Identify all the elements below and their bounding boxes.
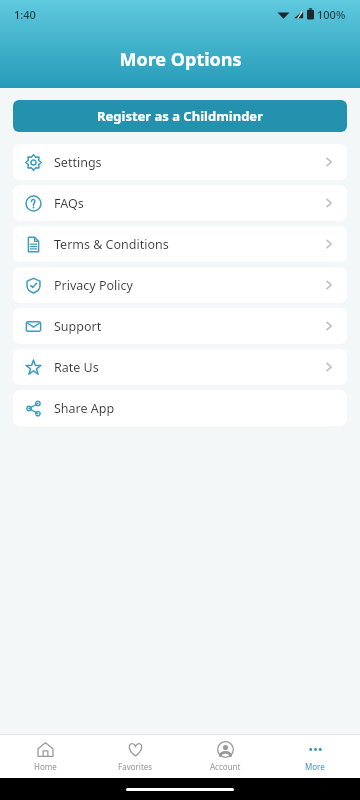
staticText: FAQs <box>54 195 84 212</box>
other: Share App <box>25 400 42 417</box>
staticText: Share App <box>54 400 115 417</box>
other: Rate Us <box>25 359 42 376</box>
button[interactable]: Support <box>13 308 347 344</box>
button[interactable]: Settings <box>13 144 347 180</box>
staticText: Rate Us <box>54 359 99 376</box>
button[interactable]: Register as a Childminder <box>13 100 347 132</box>
button[interactable]: Terms and Conditions <box>13 226 347 262</box>
other: Terms and Conditions <box>25 236 42 253</box>
staticText: 100% <box>317 7 346 22</box>
button[interactable]: More <box>270 734 360 778</box>
staticText: More Options <box>119 47 242 72</box>
button[interactable]: Privacy Policy <box>13 267 347 303</box>
button[interactable]: Home <box>0 734 90 778</box>
staticText: Support <box>54 318 102 335</box>
staticText: Account <box>210 761 241 772</box>
staticText: 1:40 <box>14 7 36 22</box>
button[interactable]: Rate Us <box>13 349 347 385</box>
staticText: Terms & Conditions <box>54 236 169 253</box>
button[interactable]: FAQs <box>13 185 347 221</box>
staticText: Settings <box>54 154 102 171</box>
button[interactable]: Share App <box>13 390 347 426</box>
other: FAQs <box>25 195 42 212</box>
staticText: Privacy Policy <box>54 277 133 294</box>
staticText: Home <box>34 761 57 772</box>
button[interactable]: Favorites <box>90 734 180 778</box>
other: Settings <box>25 154 42 171</box>
other: Privacy Policy <box>25 277 42 294</box>
other: Support <box>25 318 42 335</box>
staticText: More <box>305 761 325 772</box>
staticText: Favorites <box>118 761 153 772</box>
staticText: Register as a Childminder <box>97 107 263 125</box>
button[interactable]: Account <box>180 734 270 778</box>
